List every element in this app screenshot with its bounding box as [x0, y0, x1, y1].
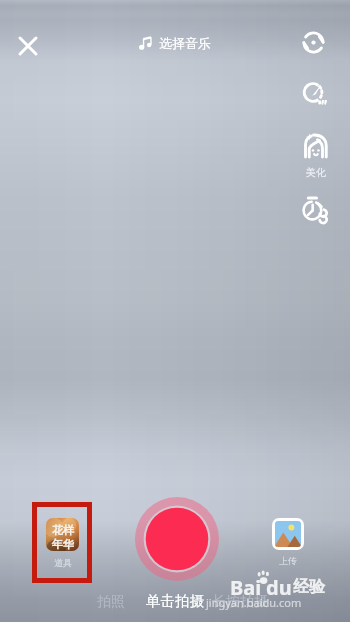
- button[interactable]: Close: [10, 28, 45, 63]
- button[interactable]: 长按拍摄: [207, 592, 273, 612]
- staticText: 长按拍摄: [212, 593, 268, 611]
- button[interactable]: Flash off: [303, 82, 328, 107]
- staticText: 上传: [279, 555, 297, 566]
- staticText: Bai: [230, 574, 262, 601]
- staticText: 拍照: [97, 593, 125, 611]
- staticText: 年华: [52, 537, 74, 551]
- staticText: 单击拍摄: [146, 592, 204, 610]
- button[interactable]: 花样: [32, 502, 92, 583]
- button[interactable]: 拍照: [92, 592, 130, 612]
- button[interactable]: 上传: [256, 518, 320, 566]
- staticText: 经验: [293, 577, 325, 597]
- button[interactable]: 美化: [296, 133, 335, 179]
- staticText: 美化: [306, 166, 326, 179]
- staticText: du: [266, 574, 292, 601]
- staticText: 道具: [54, 557, 72, 568]
- button[interactable]: Flip camera: [300, 29, 327, 56]
- button[interactable]: Shutter: [135, 497, 219, 581]
- button[interactable]: 单击拍摄: [141, 591, 209, 611]
- staticText: 选择音乐: [159, 35, 211, 51]
- staticText: jingyan.baidu.com: [206, 595, 302, 610]
- button[interactable]: 选择音乐: [133, 32, 217, 54]
- staticText: 花样: [52, 523, 74, 537]
- button[interactable]: Countdown timer: [302, 196, 328, 222]
